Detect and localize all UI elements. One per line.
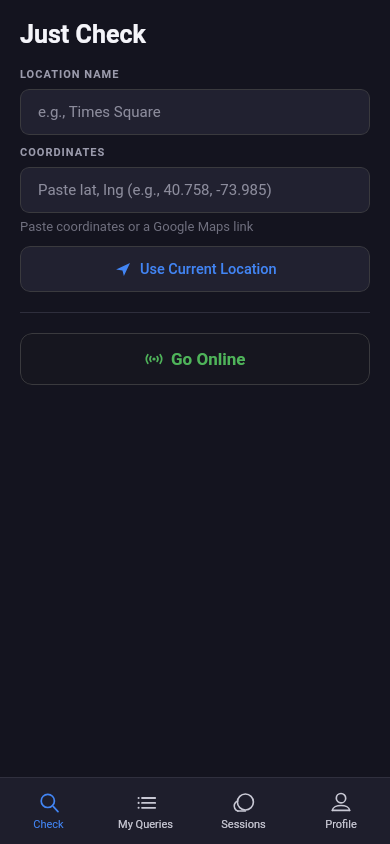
button[interactable]: Check — [0, 778, 97, 831]
button[interactable]: Sessions — [194, 778, 292, 831]
staticText: Paste coordinates or a Google Maps link — [20, 219, 254, 234]
staticText: Use Current Location — [140, 261, 277, 278]
staticText: LOCATION NAME — [20, 68, 120, 81]
other: Profile — [331, 794, 351, 814]
staticText: Just Check — [20, 20, 146, 49]
button[interactable]: Paste lat, lng (e.g., 40.758, -73.985) — [20, 167, 370, 213]
staticText: Paste lat, lng (e.g., 40.758, -73.985) — [38, 181, 272, 199]
button[interactable]: Use Current Location — [20, 246, 370, 292]
staticText: Check — [33, 818, 64, 831]
staticText: COORDINATES — [20, 146, 106, 159]
other: Sessions — [233, 794, 253, 814]
staticText: Go Online — [171, 349, 246, 369]
staticText: My Queries — [118, 818, 173, 831]
button[interactable]: e.g., Times Square — [20, 89, 370, 135]
other: Check — [39, 794, 59, 814]
staticText: Sessions — [221, 818, 266, 831]
button[interactable]: My Queries — [97, 778, 194, 831]
staticText: Profile — [325, 818, 357, 831]
button[interactable]: Profile — [292, 778, 390, 831]
other: My Queries — [136, 794, 156, 814]
staticText: e.g., Times Square — [38, 103, 161, 121]
button[interactable]: Go Online — [20, 333, 370, 385]
